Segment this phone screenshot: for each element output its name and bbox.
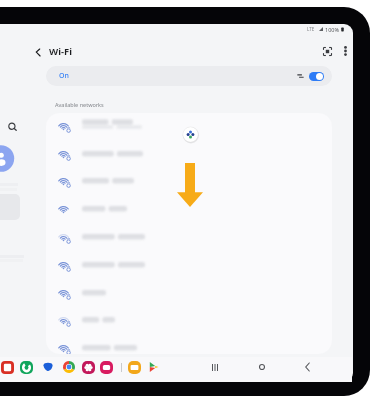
button[interactable]: My Files xyxy=(128,361,141,374)
button[interactable] xyxy=(46,224,332,250)
button[interactable]: Chrome xyxy=(63,361,75,373)
button[interactable]: Camera xyxy=(100,361,113,374)
button[interactable]: Recents xyxy=(208,360,222,374)
button[interactable] xyxy=(46,168,332,194)
button[interactable] xyxy=(46,113,332,139)
button[interactable] xyxy=(46,335,332,354)
staticText: 100% xyxy=(325,26,340,33)
button[interactable]: Wi-Fi toggle xyxy=(309,72,324,81)
button[interactable]: Messages xyxy=(43,362,53,371)
staticText: Available networks xyxy=(55,101,104,108)
button[interactable]: Account xyxy=(0,144,16,173)
button[interactable]: Phone xyxy=(20,361,33,374)
button[interactable] xyxy=(46,280,332,306)
button[interactable] xyxy=(46,141,332,167)
button[interactable]: Scan QR code xyxy=(320,44,334,58)
button[interactable]: Play Store xyxy=(149,361,159,373)
button[interactable]: More options xyxy=(338,44,352,58)
staticText: Wi-Fi xyxy=(49,45,73,58)
button[interactable]: On xyxy=(46,66,332,86)
button[interactable]: Photos app xyxy=(82,361,95,374)
button[interactable]: Back xyxy=(31,45,45,59)
staticText: LTE xyxy=(307,26,315,32)
button[interactable]: Search xyxy=(5,119,19,133)
button[interactable]: Home xyxy=(255,360,269,374)
button[interactable] xyxy=(46,307,332,333)
button[interactable]: Notes xyxy=(1,361,14,374)
button[interactable]: AI suggestion xyxy=(181,125,200,144)
staticText: On xyxy=(59,71,69,81)
button[interactable] xyxy=(46,196,332,222)
button[interactable] xyxy=(46,252,332,278)
button[interactable]: Back xyxy=(300,360,314,374)
